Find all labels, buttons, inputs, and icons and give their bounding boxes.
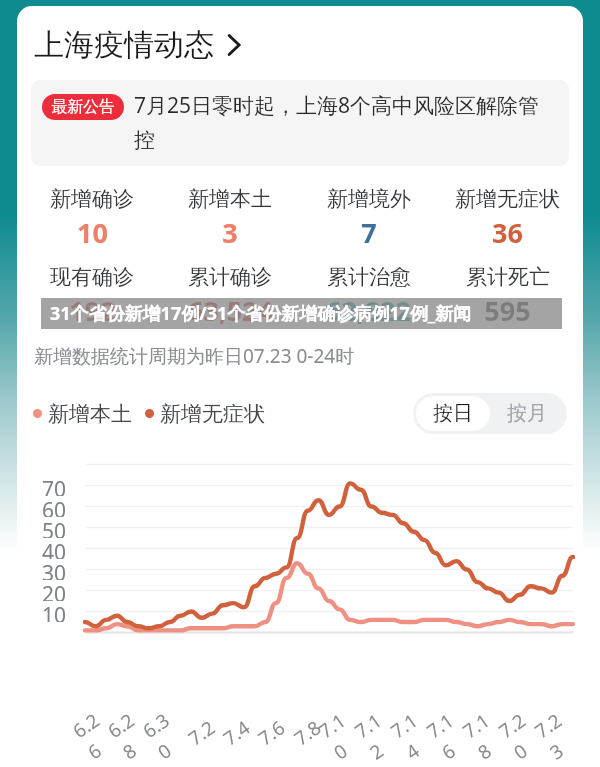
staticText: 36 (492, 214, 523, 251)
button[interactable]: 现有确诊 (23, 264, 161, 329)
staticText: 7.4 (218, 715, 255, 751)
other: More (223, 36, 241, 54)
button[interactable]: 新增本土 (161, 186, 299, 251)
staticText: 新增境外 (327, 186, 411, 212)
button[interactable]: 31个省份新增17例/31个省份新增确诊病例17例_新闻 (41, 298, 562, 329)
staticText: 新增确诊 (50, 186, 134, 212)
staticText: 10 (42, 601, 67, 622)
staticText: 6.26 (67, 703, 125, 764)
staticText: 60 (42, 496, 67, 517)
staticText: 6.30 (137, 703, 195, 764)
staticText: 累计确诊 (188, 264, 272, 290)
staticText: 7.16 (422, 702, 480, 765)
staticText: 7.8 (289, 715, 326, 751)
staticText: 累计治愈 (327, 264, 411, 290)
staticText: 10 (77, 214, 108, 251)
staticText: 最新公告 (51, 97, 115, 117)
staticText: 50 (42, 517, 67, 538)
staticText: 192 (69, 292, 116, 329)
staticText: 7.20 (494, 702, 552, 765)
staticText: 上海疫情动态 (34, 26, 214, 64)
staticText: 7.10 (314, 702, 372, 765)
button[interactable]: 按月 (490, 396, 564, 431)
staticText: 新增本土 (48, 401, 132, 427)
staticText: 7.23 (530, 702, 583, 765)
button[interactable]: 累计确诊 (161, 264, 299, 329)
staticText: 62,822 (326, 292, 411, 329)
staticText: 7.6 (253, 715, 290, 751)
staticText: 按日 (433, 401, 473, 426)
staticText: 现有确诊 (50, 264, 134, 290)
staticText: 7.14 (386, 702, 444, 765)
button[interactable]: 最新公告 (31, 80, 569, 166)
button[interactable]: 新增确诊 (23, 186, 161, 251)
staticText: 新增本土 (188, 186, 272, 212)
button[interactable]: 按日 (416, 396, 490, 431)
staticText: 新增无症状 (160, 401, 265, 427)
button[interactable]: 新增境外 (299, 186, 438, 251)
button[interactable]: 新增无症状 (438, 186, 577, 251)
staticText: 7月25日零时起，上海8个高中风险区解除管控 (134, 91, 557, 153)
staticText: 6.28 (102, 703, 160, 764)
button[interactable]: 累计死亡 (438, 264, 577, 329)
staticText: 新增无症状 (455, 186, 560, 212)
staticText: 3 (222, 214, 238, 251)
staticText: 595 (484, 292, 531, 329)
staticText: 40 (42, 538, 67, 559)
button[interactable]: 上海疫情动态 (34, 26, 241, 64)
staticText: 31个省份新增17例/31个省份新增确诊病例17例_新闻 (50, 301, 472, 326)
staticText: 30 (42, 559, 67, 580)
staticText: 按月 (507, 401, 547, 426)
staticText: 新增数据统计周期为昨日07.23 0-24时 (34, 343, 355, 369)
staticText: 7.12 (350, 702, 408, 765)
staticText: 70 (42, 475, 67, 496)
staticText: 7 (361, 214, 377, 251)
button[interactable]: 累计治愈 (299, 264, 438, 329)
staticText: 63,524 (188, 292, 273, 329)
staticText: 7.2 (183, 715, 220, 751)
staticText: 累计死亡 (466, 264, 550, 290)
staticText: 7.18 (458, 702, 516, 765)
staticText: 20 (42, 580, 67, 601)
